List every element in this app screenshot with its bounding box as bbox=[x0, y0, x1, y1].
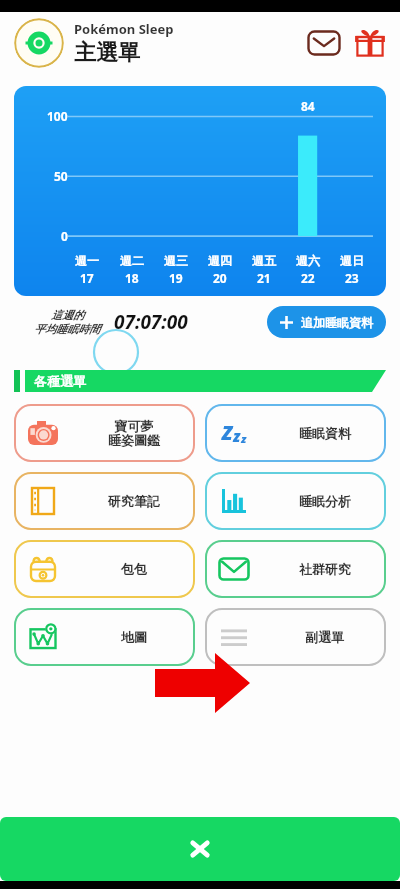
button[interactable]: 研究筆記 bbox=[14, 472, 195, 530]
button[interactable]: 100 bbox=[14, 86, 386, 296]
staticText: 20 bbox=[213, 270, 227, 286]
button[interactable]: Z bbox=[205, 404, 386, 462]
staticText: z bbox=[241, 431, 247, 446]
button[interactable]: 社群研究 bbox=[205, 540, 386, 598]
staticText: 寶可夢 睡姿圖鑑 bbox=[108, 418, 160, 449]
staticText: 平均睡眠時間 bbox=[34, 322, 100, 336]
button[interactable]: 寶可夢 睡姿圖鑑 bbox=[14, 404, 195, 462]
staticText: 50 bbox=[54, 168, 68, 184]
staticText: z bbox=[233, 426, 241, 446]
staticText: 追加睡眠資料 bbox=[301, 315, 373, 330]
staticText: 84 bbox=[301, 98, 315, 114]
staticText: Z bbox=[222, 420, 233, 446]
button[interactable]: Mail bbox=[304, 26, 344, 60]
staticText: 睡眠資料 bbox=[299, 425, 351, 441]
button[interactable]: 地圖 bbox=[14, 608, 195, 666]
staticText: 18 bbox=[125, 270, 139, 286]
staticText: 各種選單 bbox=[34, 373, 86, 389]
staticText: 週日 bbox=[340, 253, 364, 268]
button[interactable]: Close bbox=[0, 817, 400, 881]
button[interactable]: 包包 bbox=[14, 540, 195, 598]
staticText: 週三 bbox=[164, 253, 188, 268]
button[interactable]: 副選單 bbox=[205, 608, 386, 666]
staticText: 睡眠分析 bbox=[299, 493, 351, 509]
staticText: 社群研究 bbox=[299, 561, 351, 577]
button[interactable]: 睡眠分析 bbox=[205, 472, 386, 530]
staticText: 週四 bbox=[208, 253, 232, 268]
staticText: 副選單 bbox=[305, 629, 344, 645]
staticText: 主選單 bbox=[74, 39, 140, 67]
staticText: 週六 bbox=[296, 253, 320, 268]
button[interactable]: Profile bbox=[14, 18, 64, 68]
staticText: 週一 bbox=[75, 253, 99, 268]
staticText: 研究筆記 bbox=[108, 493, 160, 509]
staticText: 週二 bbox=[120, 253, 144, 268]
staticText: 19 bbox=[169, 270, 183, 286]
staticText: Pokémon Sleep bbox=[74, 20, 174, 38]
staticText: 0 bbox=[61, 228, 68, 244]
button[interactable]: Gifts bbox=[350, 23, 390, 63]
staticText: 地圖 bbox=[121, 629, 147, 645]
button[interactable]: 追加睡眠資料 bbox=[267, 306, 386, 338]
staticText: 100 bbox=[47, 108, 68, 124]
staticText: 包包 bbox=[121, 561, 147, 577]
staticText: 21 bbox=[257, 270, 271, 286]
staticText: 23 bbox=[345, 270, 359, 286]
staticText: 22 bbox=[301, 270, 315, 286]
staticText: 週五 bbox=[252, 253, 276, 268]
staticText: 07:07:00 bbox=[114, 309, 188, 335]
staticText: 17 bbox=[80, 270, 94, 286]
staticText: 這週的 bbox=[51, 308, 84, 322]
